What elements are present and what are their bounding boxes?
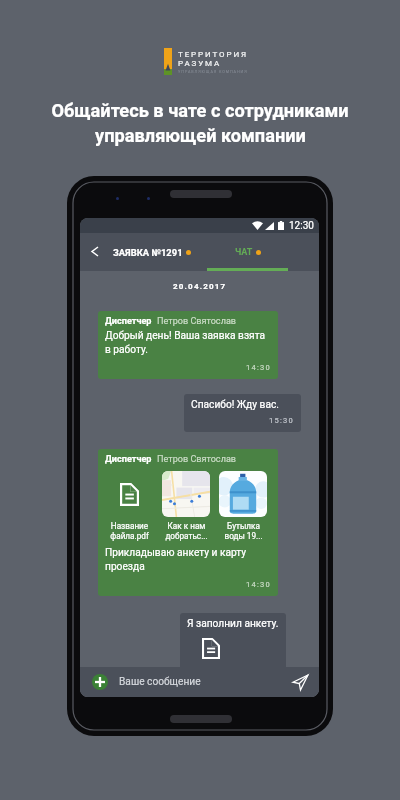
- staticText: Я заполнил анкету.: [187, 618, 279, 630]
- button[interactable]: Диспетчер: [98, 449, 278, 596]
- button[interactable]: Attach: [92, 674, 108, 690]
- staticText: Диспетчер: [105, 454, 152, 465]
- staticText: РАЗУМА: [178, 59, 222, 68]
- staticText: управляющей компании: [95, 125, 306, 146]
- staticText: Ваше сообщение: [119, 676, 201, 688]
- staticText: 12:30: [289, 220, 314, 232]
- staticText: Бутылка воды 19...: [224, 521, 263, 541]
- button[interactable]: Название файла.pdf: [105, 471, 153, 541]
- staticText: Петров Святослав: [157, 454, 237, 465]
- staticText: Прикладываю анкету и карту проезда: [105, 547, 271, 573]
- button[interactable]: Я заполнил анкету.: [180, 613, 286, 683]
- staticText: 14:30: [105, 580, 271, 589]
- staticText: Общайтесь в чате с сотрудниками: [51, 100, 349, 121]
- button[interactable]: Back: [83, 238, 107, 265]
- button[interactable]: Send: [293, 675, 308, 690]
- staticText: УПРАВЛЯЮЩАЯ КОМПАНИЯ: [178, 69, 248, 73]
- staticText: Петров Святослав: [157, 316, 237, 327]
- button[interactable]: Диспетчер: [98, 311, 278, 379]
- staticText: Как к нам добратьс...: [165, 521, 208, 541]
- button[interactable]: Спасибо! Жду вас.: [184, 394, 301, 432]
- staticText: Добрый день! Ваша заявка взята в работу.: [105, 330, 271, 356]
- staticText: ЗАЯВКА №1291: [113, 247, 183, 258]
- button[interactable]: Бутылка воды 19...: [219, 471, 267, 541]
- staticText: Название файла.pdf: [110, 521, 149, 541]
- staticText: 14:30: [105, 363, 271, 372]
- button[interactable]: ЗАЯВКА №1291: [109, 233, 195, 271]
- staticText: ЧАТ: [235, 247, 253, 258]
- staticText: 20.04.2017: [173, 282, 227, 291]
- staticText: Спасибо! Жду вас.: [191, 399, 279, 411]
- button[interactable]: Attachment: [187, 637, 235, 660]
- button[interactable]: Как к нам добратьс...: [162, 471, 210, 541]
- staticText: Диспетчер: [105, 316, 152, 327]
- staticText: ТЕРРИТОРИЯ: [178, 50, 249, 59]
- button[interactable]: ЧАТ: [207, 233, 288, 271]
- staticText: 15:30: [191, 416, 294, 425]
